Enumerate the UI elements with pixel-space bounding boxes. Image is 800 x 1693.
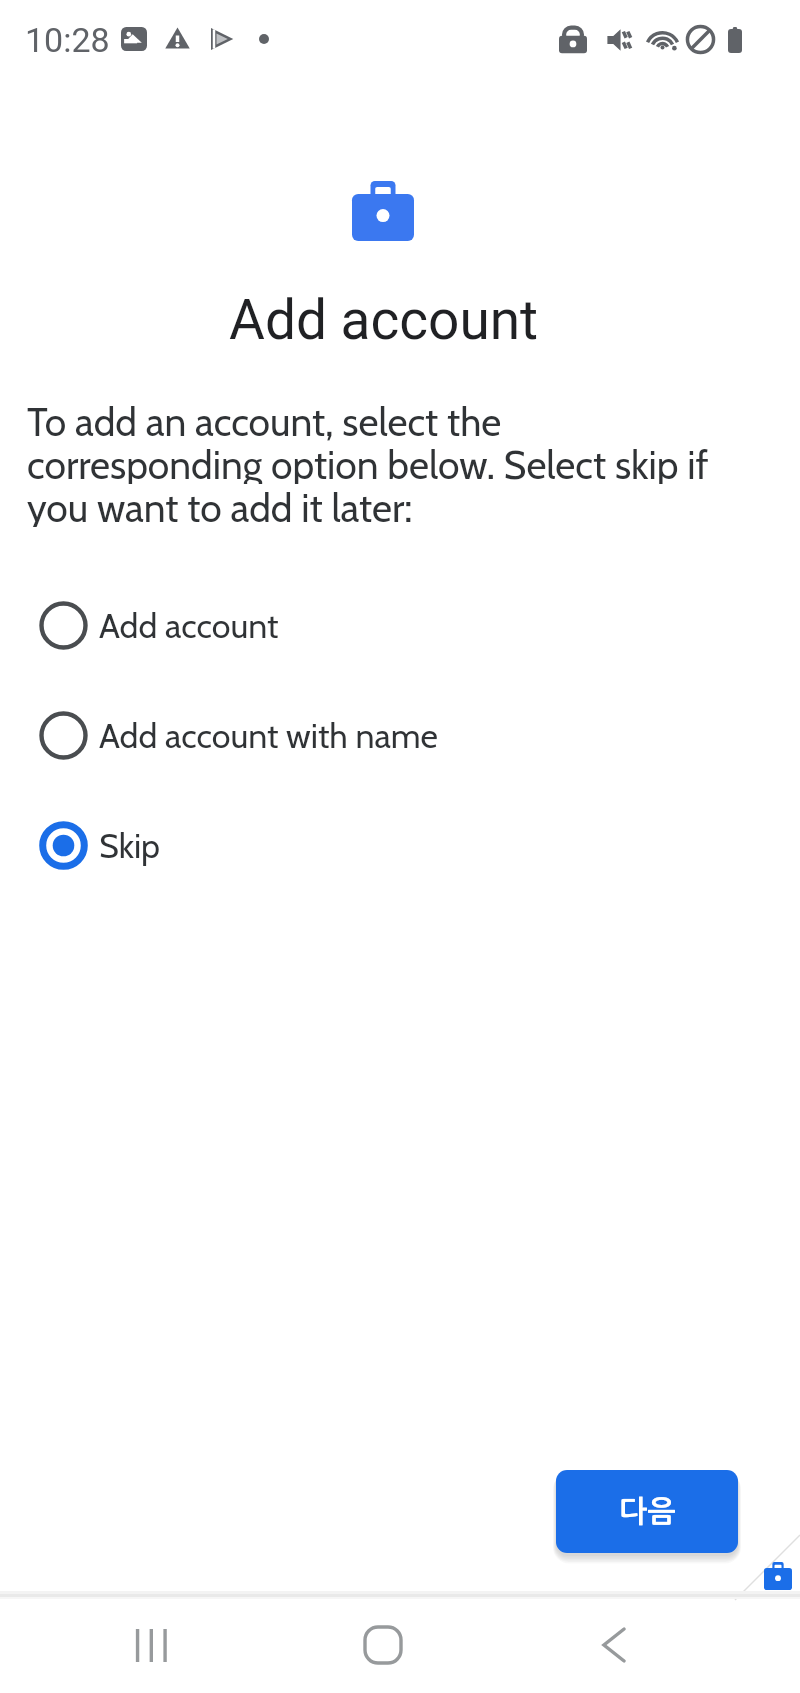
staticText: 10:28 <box>25 20 110 60</box>
staticText: To add an account, select the <box>27 398 502 441</box>
button[interactable]: Back <box>574 1605 654 1685</box>
staticText: corresponding option below. Select skip … <box>27 441 709 484</box>
button[interactable]: Home <box>343 1605 423 1685</box>
button[interactable]: Add account with name <box>0 695 800 775</box>
staticText: Skip <box>99 825 161 866</box>
staticText: Add account with name <box>99 715 438 756</box>
button[interactable]: Add account <box>0 585 800 665</box>
staticText: 다음 <box>619 1497 676 1527</box>
button[interactable]: Skip <box>0 805 800 885</box>
button[interactable]: 다음 <box>556 1470 738 1553</box>
staticText: you want to add it later: <box>27 484 413 527</box>
staticText: Add account <box>229 288 539 352</box>
button[interactable]: Recent apps <box>111 1605 191 1685</box>
staticText: Add account <box>99 605 279 646</box>
